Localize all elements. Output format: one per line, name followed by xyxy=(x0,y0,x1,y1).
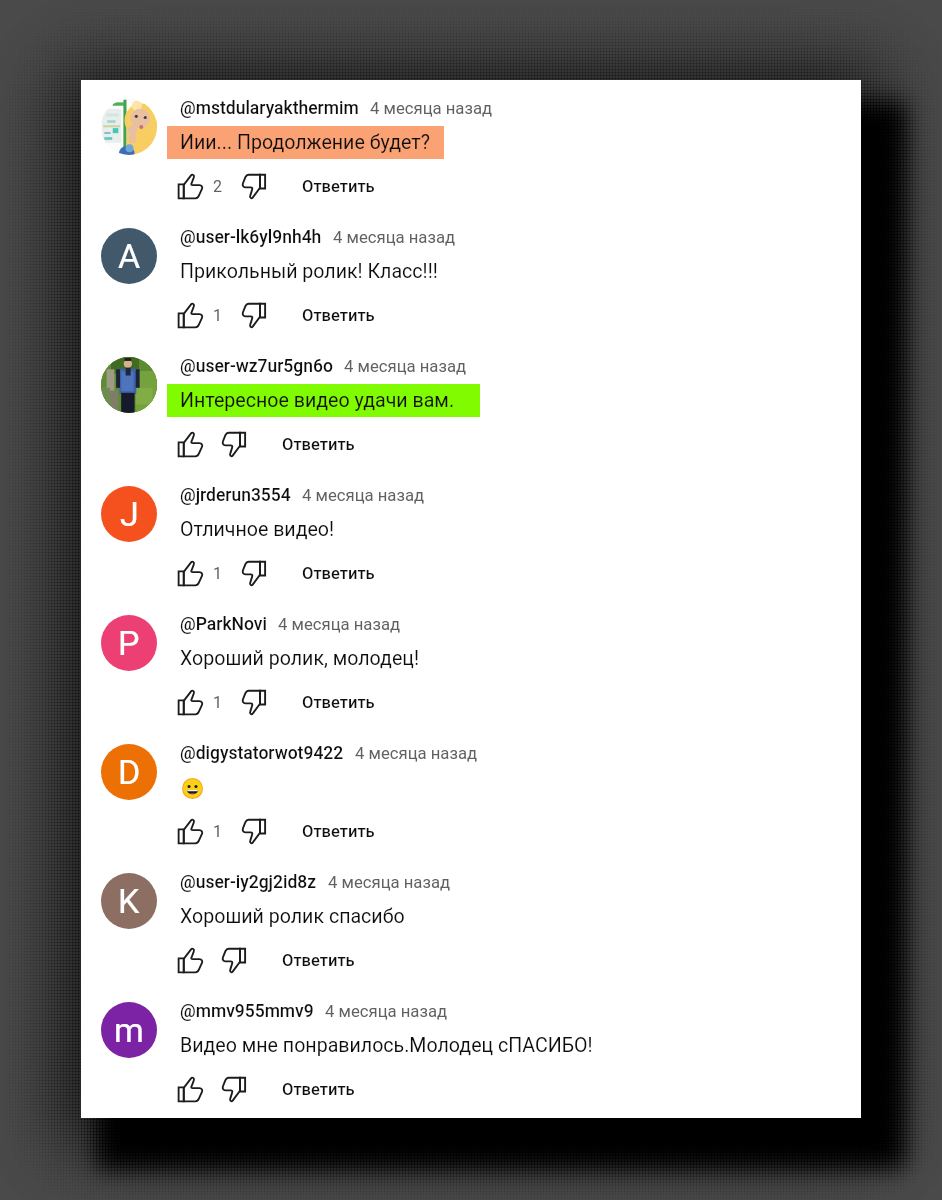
button[interactable]: Ответить xyxy=(298,687,379,718)
staticText: 1 xyxy=(213,693,222,712)
button[interactable]: Profile picture xyxy=(81,596,861,725)
staticText: 4 месяца назад xyxy=(278,615,401,635)
staticText: Ответить xyxy=(282,435,355,454)
staticText: P xyxy=(118,623,140,663)
staticText: @user-iy2gj2id8z xyxy=(180,872,317,893)
button[interactable]: Like xyxy=(173,685,207,719)
staticText: Отличное видео! xyxy=(180,518,335,541)
button[interactable]: Dislike xyxy=(236,814,270,848)
button[interactable]: Like xyxy=(173,1072,207,1106)
staticText: 4 месяца назад xyxy=(333,228,456,248)
button[interactable]: Profile picture xyxy=(81,80,861,209)
button[interactable]: Dislike xyxy=(236,685,270,719)
button[interactable]: Profile picture xyxy=(81,338,861,467)
button[interactable]: Dislike xyxy=(236,169,270,203)
button[interactable]: Profile picture xyxy=(81,854,861,983)
button[interactable]: Profile picture xyxy=(81,725,861,854)
staticText: 4 месяца назад xyxy=(328,873,451,893)
button[interactable]: Ответить xyxy=(298,816,379,847)
staticText: 4 месяца назад xyxy=(344,357,467,377)
button[interactable]: Profile picture xyxy=(101,357,157,413)
button[interactable]: Like xyxy=(173,814,207,848)
staticText: @mmv955mmv9 xyxy=(180,1001,314,1022)
button[interactable]: Like xyxy=(173,169,207,203)
staticText: Ответить xyxy=(282,1080,355,1099)
staticText: Ответить xyxy=(302,822,375,841)
button[interactable]: Profile picture xyxy=(81,467,861,596)
staticText: m xyxy=(114,1010,144,1050)
staticText: Прикольный ролик! Класс!!! xyxy=(180,260,438,283)
staticText: 1 xyxy=(213,822,222,841)
staticText: Ответить xyxy=(302,177,375,196)
staticText: @user-lk6yl9nh4h xyxy=(180,227,322,248)
staticText: 4 месяца назад xyxy=(302,486,425,506)
staticText: @ParkNovi xyxy=(180,614,267,635)
staticText: Хороший ролик, молодец! xyxy=(180,647,419,670)
button[interactable]: Profile picture xyxy=(101,615,157,671)
button[interactable]: Like xyxy=(173,943,207,977)
button[interactable]: Profile picture xyxy=(101,1002,157,1058)
button[interactable]: Profile picture xyxy=(101,486,157,542)
button[interactable]: Profile picture xyxy=(81,209,861,338)
staticText: Ответить xyxy=(282,951,355,970)
staticText: 4 месяца назад xyxy=(325,1002,448,1022)
staticText: Иии... Продолжение будет? xyxy=(180,131,431,154)
button[interactable]: Dislike xyxy=(236,556,270,590)
staticText: 1 xyxy=(213,564,222,583)
button[interactable]: Ответить xyxy=(298,300,379,331)
button[interactable]: Ответить xyxy=(278,1074,359,1105)
staticText: 1 xyxy=(213,306,222,325)
staticText: Видео мне понравилось.Молодец сПАСИБО! xyxy=(180,1034,593,1057)
button[interactable]: Profile picture xyxy=(101,228,157,284)
staticText: @mstdularyakthermim xyxy=(180,98,359,119)
button[interactable]: Like xyxy=(173,427,207,461)
button[interactable]: Dislike xyxy=(236,298,270,332)
staticText: @digystatorwot9422 xyxy=(180,743,344,764)
staticText: Ответить xyxy=(302,693,375,712)
staticText: Ответить xyxy=(302,564,375,583)
button[interactable]: Ответить xyxy=(298,558,379,589)
button[interactable]: Like xyxy=(173,556,207,590)
staticText: @user-wz7ur5gn6o xyxy=(180,356,333,377)
staticText: Хороший ролик спасибо xyxy=(180,905,405,928)
button[interactable]: Dislike xyxy=(216,1072,250,1106)
staticText: @jrderun3554 xyxy=(180,485,291,506)
staticText: Интересное видео удачи вам. xyxy=(180,389,455,412)
button[interactable]: Profile picture xyxy=(101,99,157,155)
button[interactable]: Profile picture xyxy=(101,873,157,929)
button[interactable]: Ответить xyxy=(278,429,359,460)
staticText: Ответить xyxy=(302,306,375,325)
button[interactable]: Dislike xyxy=(216,943,250,977)
staticText: K xyxy=(118,881,140,921)
button[interactable]: Ответить xyxy=(278,945,359,976)
button[interactable]: Ответить xyxy=(298,171,379,202)
button[interactable]: Like xyxy=(173,298,207,332)
staticText: 2 xyxy=(213,177,222,196)
staticText: 4 месяца назад xyxy=(355,744,478,764)
button[interactable]: Dislike xyxy=(216,427,250,461)
staticText: D xyxy=(118,752,141,792)
staticText: A xyxy=(118,236,141,276)
button[interactable]: Profile picture xyxy=(101,744,157,800)
staticText: J xyxy=(120,494,139,534)
button[interactable]: Profile picture xyxy=(81,983,861,1112)
staticText: 4 месяца назад xyxy=(370,99,493,119)
